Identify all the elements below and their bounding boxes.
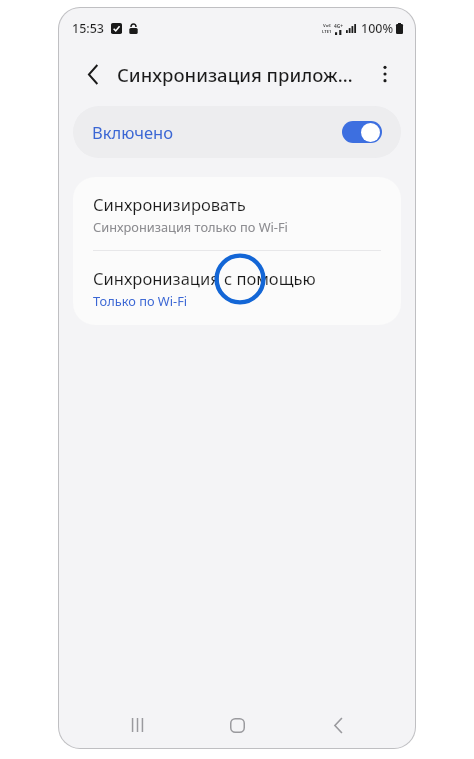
staticText: 4G+ (334, 23, 343, 30)
button[interactable]: Синхронизация с помощью (73, 251, 401, 325)
staticText: Синхронизация только по Wi-Fi (93, 218, 288, 235)
button[interactable]: Включено (73, 106, 401, 158)
staticText: 100% (361, 20, 394, 37)
staticText: Синхронизировать (93, 193, 246, 215)
staticText: 15:53 (72, 20, 105, 37)
button[interactable]: Назад (315, 702, 361, 748)
staticText: LTE1 (322, 29, 332, 35)
staticText: Синхронизация прилож… (117, 62, 353, 87)
staticText: Только по Wi-Fi (93, 292, 188, 309)
button[interactable]: Ещё (369, 58, 401, 90)
staticText: VoЄ (323, 23, 331, 29)
staticText: Включено (92, 121, 173, 143)
button[interactable]: Главный экран (214, 702, 260, 748)
staticText: Синхронизация с помощью (93, 267, 316, 289)
button[interactable]: Последние приложения (114, 702, 160, 748)
button[interactable]: Назад (76, 57, 110, 91)
button[interactable]: Синхронизировать (73, 177, 401, 250)
